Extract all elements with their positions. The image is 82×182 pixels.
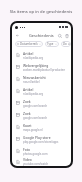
button[interactable]: Terug [14, 32, 21, 39]
staticText: Sla items op in de geschiedenis [0, 9, 82, 15]
staticText: Datumbereik [20, 42, 38, 46]
staticText: Kaart [23, 123, 32, 127]
staticText: Artikel [23, 51, 34, 55]
staticText: Google Play store [23, 135, 51, 139]
staticText: youtube.com/watch [23, 162, 49, 166]
button[interactable]: Google Play store [12, 133, 71, 145]
staticText: Zoek [23, 99, 31, 103]
staticText: Foto [23, 147, 31, 151]
staticText: Type [47, 42, 54, 46]
staticText: nl.wikipedia.org [23, 56, 44, 60]
button[interactable]: Artikel [12, 49, 71, 61]
button[interactable]: Domein [61, 41, 71, 47]
button[interactable]: Zoek [12, 97, 71, 109]
button[interactable]: Zoeken [56, 32, 63, 39]
staticText: Geschiedenis [29, 33, 54, 38]
button[interactable]: Geschiedenis wissen [63, 32, 70, 39]
button[interactable]: Nieuwsbericht [12, 73, 71, 85]
staticText: Nieuwsbericht [23, 75, 46, 79]
staticText: Domein [63, 42, 69, 46]
staticText: google.com/search [23, 104, 48, 108]
button[interactable]: Webvergelijking [12, 61, 71, 73]
button[interactable]: Foto [12, 145, 71, 157]
button[interactable]: Video [12, 157, 71, 166]
staticText: nl.wikipedia.org [23, 92, 44, 96]
button[interactable]: Artikel [12, 85, 71, 97]
staticText: photos.google.com [23, 152, 48, 156]
staticText: nos.nl/artikel [23, 80, 40, 84]
staticText: Video [23, 157, 32, 161]
button[interactable]: Type [45, 41, 59, 47]
button[interactable]: Kaart [12, 121, 71, 133]
staticText: Zoek [23, 111, 31, 115]
staticText: play.google.com/store/apps [23, 140, 59, 144]
button[interactable]: Zoek [12, 109, 71, 121]
staticText: Webvergelijking [23, 63, 49, 67]
staticText: maps.google.nl [23, 128, 43, 132]
staticText: zoeken.marktplaats.nl/producten [23, 68, 66, 72]
staticText: google.com/search [23, 116, 48, 120]
button[interactable]: Datumbereik [15, 41, 43, 47]
staticText: Artikel [23, 87, 34, 91]
